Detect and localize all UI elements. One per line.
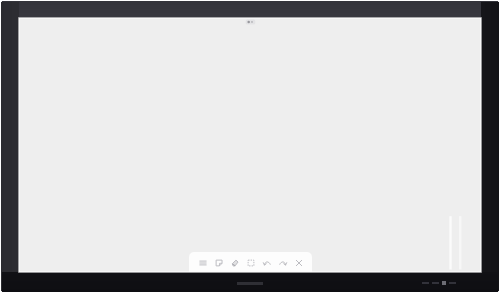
button[interactable]: Pen	[228, 254, 241, 271]
button[interactable]: Eraser	[244, 254, 257, 271]
button[interactable]: New note	[212, 254, 225, 271]
button[interactable]: Menu	[196, 254, 209, 271]
button[interactable]: Close	[292, 254, 305, 271]
button[interactable]: Redo	[276, 254, 289, 271]
button[interactable]: Undo	[260, 254, 273, 271]
